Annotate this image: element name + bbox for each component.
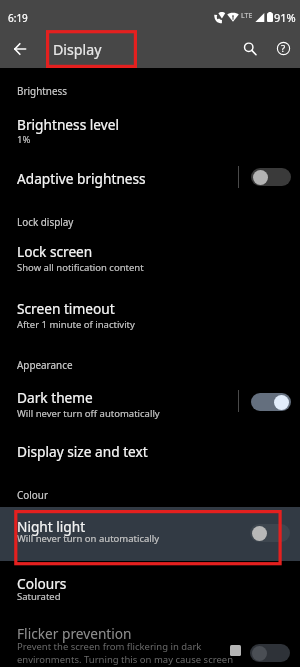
staticText: Dark theme [17,388,93,407]
button[interactable]: Turn on [250,524,290,542]
staticText: Show all notification content [17,261,144,274]
staticText: Lock display [17,215,74,228]
button[interactable]: Search [233,32,267,66]
button[interactable]: Help [266,31,300,65]
staticText: Colour [17,488,48,501]
button[interactable]: Turn on [251,168,291,186]
staticText: 1% [17,133,31,146]
button[interactable]: Turn off [251,393,291,411]
staticText: 91% [274,10,296,25]
button[interactable]: Turn on [250,644,290,662]
button[interactable]: Checkbox [230,645,241,656]
staticText: environments. Turning this on may cause … [17,653,234,666]
staticText: Brightness level [17,115,119,134]
staticText: Display size and text [17,442,148,461]
staticText: Saturated [17,590,61,603]
staticText: Brightness [17,84,67,97]
staticText: LTE [241,11,253,21]
staticText: After 1 minute of inactivity [17,318,135,331]
staticText: Prevent the screen from flickering in da… [17,640,202,653]
staticText: Adaptive brightness [17,169,146,188]
button[interactable] [0,507,300,561]
staticText: 6:19 [8,11,28,25]
staticText: Night light [17,517,86,536]
button[interactable]: Back [2,31,38,67]
staticText: Will never turn off automatically [17,407,160,420]
staticText: Screen timeout [17,299,115,318]
staticText: Flicker prevention [17,624,132,643]
staticText: Colours [17,574,67,593]
staticText: ? [281,42,286,55]
staticText: Appearance [17,358,73,371]
staticText: Will never turn on automatically [17,532,160,545]
staticText: Lock screen [17,242,93,261]
staticText: Display [53,40,102,59]
